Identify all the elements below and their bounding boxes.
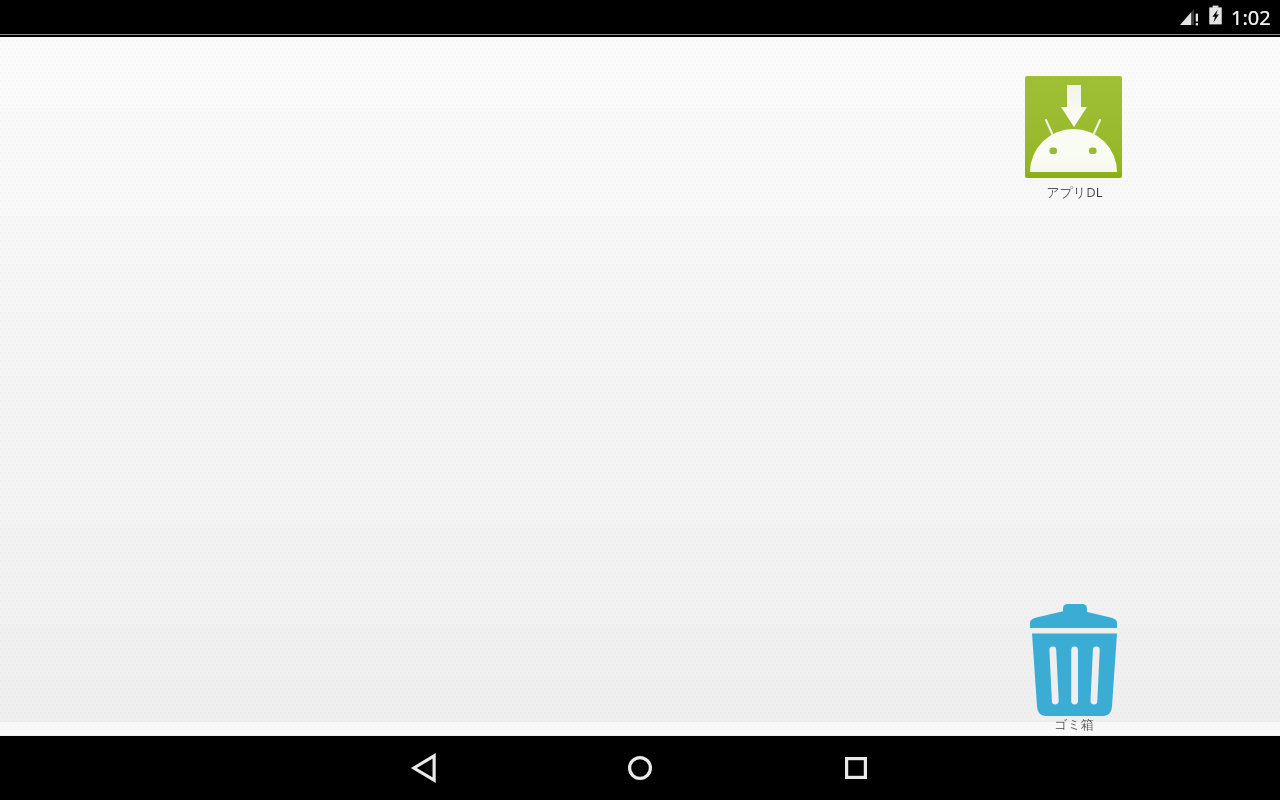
button[interactable]: Recent apps (824, 736, 888, 800)
staticText: 1:02 (1231, 4, 1271, 31)
button[interactable]: アプリDL (1017, 68, 1131, 208)
button[interactable]: Back (392, 736, 456, 800)
button[interactable]: Home (608, 736, 672, 800)
staticText: ゴミ箱 (1054, 716, 1094, 732)
button[interactable] (1017, 596, 1131, 736)
staticText: アプリDL (1046, 183, 1103, 201)
